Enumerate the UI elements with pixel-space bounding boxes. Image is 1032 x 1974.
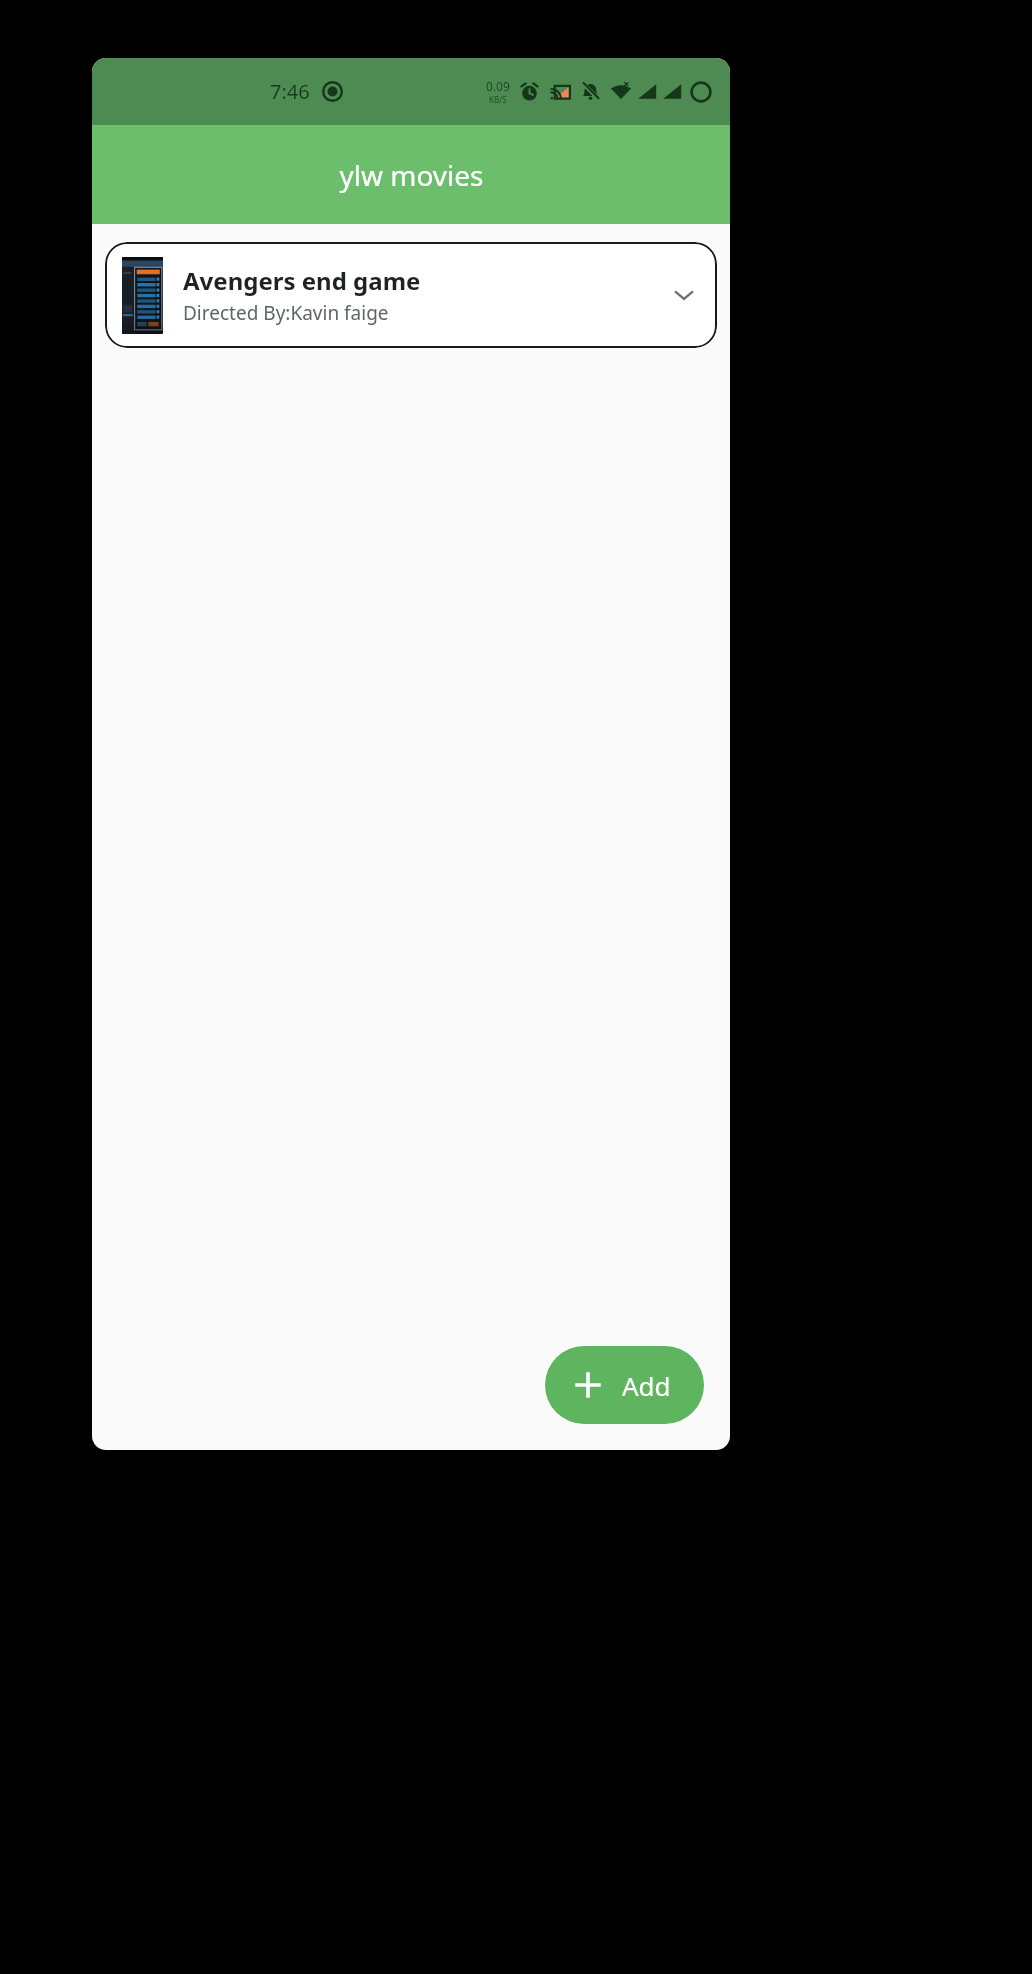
- staticText: 7:46: [270, 78, 310, 105]
- staticText: Add: [622, 1368, 671, 1403]
- staticText: KB/S: [489, 94, 507, 105]
- staticText: Avengers end game: [183, 264, 421, 297]
- staticText: ylw movies: [339, 156, 484, 194]
- button[interactable]: Expand: [664, 275, 704, 315]
- staticText: 0.09: [486, 78, 510, 94]
- staticText: Directed By:Kavin faige: [183, 300, 389, 326]
- button[interactable]: Avengers end game: [105, 242, 717, 348]
- button[interactable]: Add: [545, 1346, 704, 1424]
